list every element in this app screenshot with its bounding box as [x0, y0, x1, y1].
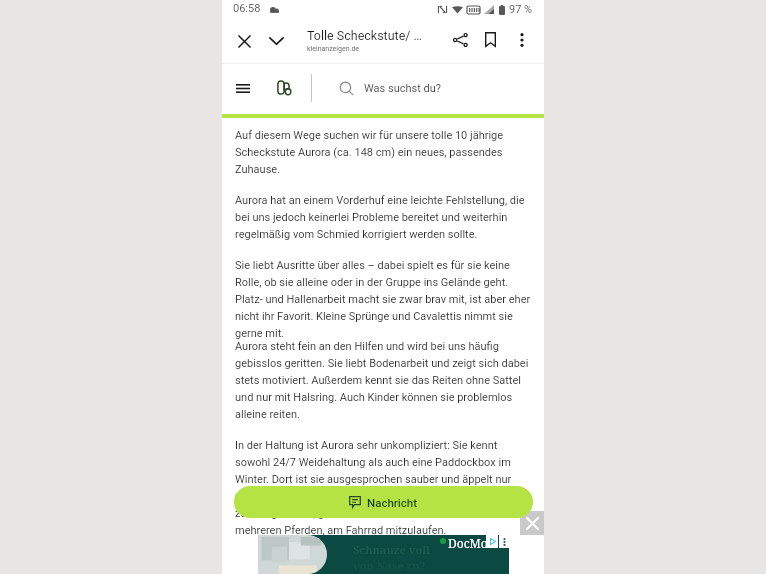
button[interactable]: Close ad — [520, 511, 544, 535]
button[interactable]: Expand — [260, 25, 292, 57]
staticText: Aurora steht fein an den Hilfen und wird… — [235, 340, 532, 421]
button[interactable]: Share — [444, 24, 476, 56]
staticText: DocMo — [448, 535, 488, 551]
staticText: Tolle Scheckstute/ … — [307, 28, 422, 43]
button[interactable]: Nachricht — [234, 486, 533, 518]
button[interactable]: Close — [228, 25, 260, 57]
staticText: Schnauze voll — [353, 542, 430, 557]
staticText: Aurora hat an einem Vorderhuf eine leich… — [235, 194, 532, 241]
staticText: In der Haltung ist Aurora sehr unkompliz… — [235, 439, 532, 537]
staticText: Auf diesem Wege suchen wir für unsere to… — [235, 129, 532, 176]
staticText: von Nase zu? — [353, 558, 426, 573]
staticText: Nachricht — [367, 496, 418, 509]
staticText: kleinanzeigen.de — [307, 45, 360, 53]
button[interactable]: Bookmark — [475, 24, 506, 55]
staticText: 97 % — [509, 3, 533, 16]
button[interactable]: Was suchst du? — [340, 64, 441, 112]
staticText: 06:58 — [233, 2, 261, 15]
button[interactable]: Kleinanzeigen home — [266, 69, 302, 105]
button[interactable]: Schnauze voll — [258, 535, 509, 574]
button[interactable]: More options — [507, 25, 537, 55]
staticText: Sie liebt Ausritte über alles – dabei sp… — [235, 259, 532, 340]
button[interactable]: Menu — [227, 72, 259, 104]
staticText: Was suchst du? — [364, 82, 441, 95]
